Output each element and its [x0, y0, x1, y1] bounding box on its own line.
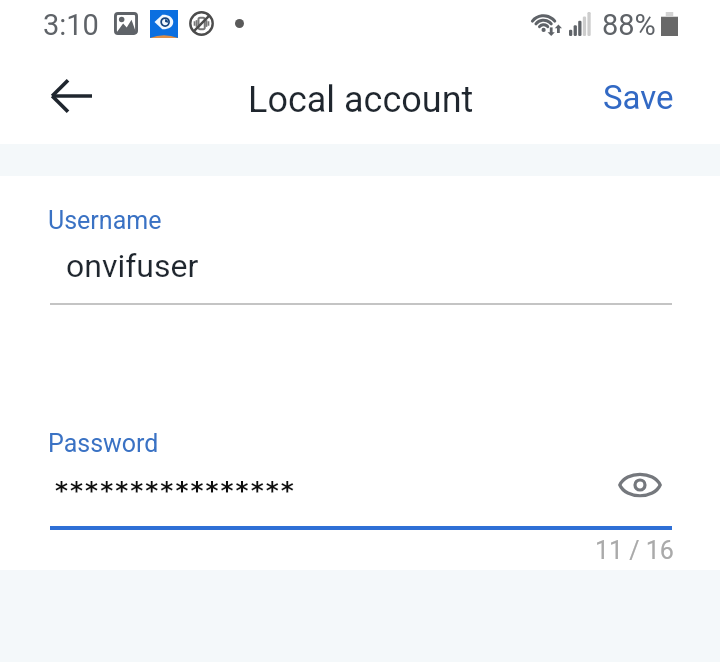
button[interactable]: Show password — [612, 457, 668, 513]
staticText: onvifuser — [66, 247, 199, 285]
button[interactable]: Back — [38, 62, 106, 130]
staticText: Save — [603, 78, 674, 117]
button[interactable]: Username — [48, 196, 672, 306]
staticText: 11 / 16 — [595, 536, 674, 565]
staticText: Password — [48, 429, 159, 458]
staticText: 88% — [602, 8, 656, 42]
button[interactable]: Save — [588, 70, 689, 125]
staticText: **************** — [54, 476, 295, 505]
staticText: 3:10 — [43, 8, 99, 42]
button[interactable]: Password — [48, 419, 672, 530]
staticText: Username — [48, 206, 162, 235]
staticText: Local account — [248, 79, 474, 121]
